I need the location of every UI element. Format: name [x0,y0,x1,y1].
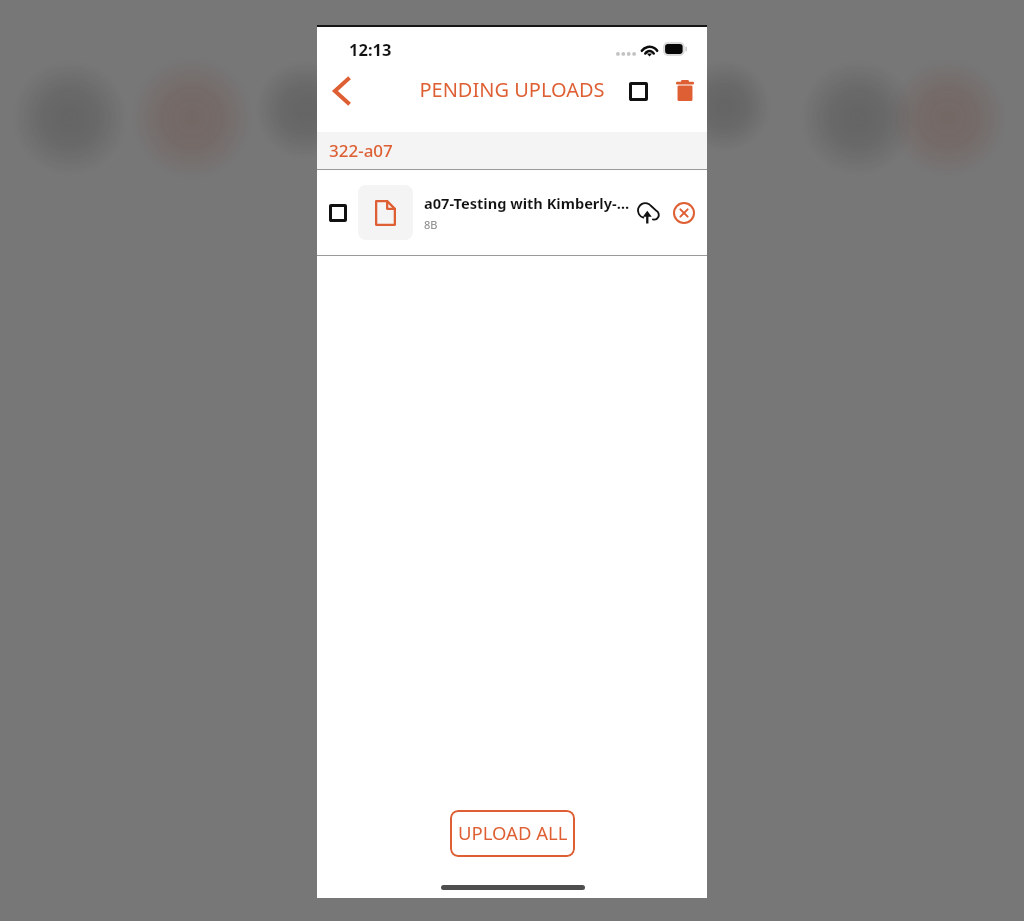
button[interactable]: Select all [618,71,658,111]
button[interactable]: Back [321,71,361,111]
staticText: 12:13 [349,38,392,60]
button[interactable]: Upload [631,196,665,230]
button[interactable]: 322-a07 [317,132,707,169]
staticText: 322-a07 [329,139,393,162]
staticText: a07-Testing with Kimberly-… [424,193,626,213]
staticText: UPLOAD ALL [458,820,568,845]
button[interactable]: UPLOAD ALL [450,810,575,857]
button[interactable]: Select file [317,170,707,255]
staticText: 8B [424,217,438,232]
staticText: PENDING UPLOADS [317,76,707,103]
button[interactable]: Delete [665,71,705,111]
button[interactable]: Cancel [667,196,701,230]
button[interactable]: Select file [321,196,355,230]
